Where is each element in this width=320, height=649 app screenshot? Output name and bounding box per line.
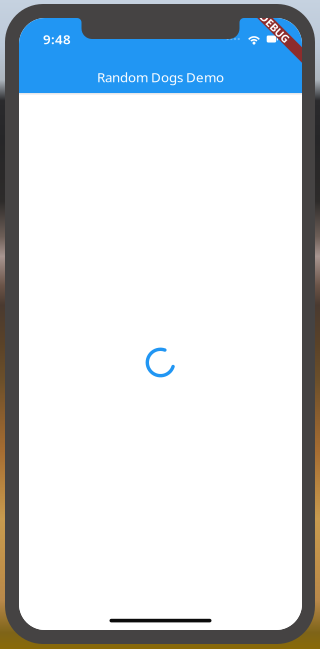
staticText: DEBUG: [256, 21, 293, 35]
staticText: 9:48: [43, 30, 71, 48]
staticText: Random Dogs Demo: [97, 68, 224, 86]
